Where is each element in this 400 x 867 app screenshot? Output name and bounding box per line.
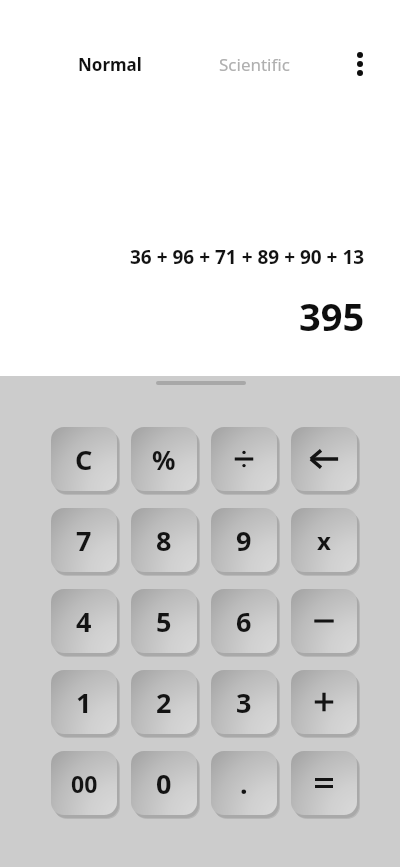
button[interactable]: Scientific (219, 49, 309, 79)
button[interactable]: More options (340, 44, 380, 84)
button[interactable]: 00 (51, 751, 117, 815)
button[interactable]: Backspace (291, 427, 357, 491)
button[interactable]: Normal (78, 49, 160, 79)
button[interactable]: Equals (291, 751, 357, 815)
staticText: 6 (236, 603, 252, 640)
button[interactable]: Subtract (291, 589, 357, 653)
staticText: % (152, 442, 176, 477)
staticText: 4 (76, 603, 92, 640)
staticText: 8 (156, 522, 172, 559)
button[interactable]: 9 (211, 508, 277, 572)
staticText: Normal (78, 53, 142, 76)
button[interactable]: 2 (131, 670, 197, 734)
button[interactable]: . (211, 751, 277, 815)
staticText: 5 (156, 603, 172, 640)
staticText: 00 (71, 768, 98, 799)
staticText: 7 (76, 522, 92, 559)
button[interactable]: Multiply (291, 508, 357, 572)
button[interactable]: Clear (51, 427, 117, 491)
staticText: 2 (156, 684, 172, 721)
staticText: 3 (236, 684, 252, 721)
staticText: 36 + 96 + 71 + 89 + 90 + 13 (130, 244, 365, 270)
button[interactable]: 0 (131, 751, 197, 815)
button[interactable]: % (131, 427, 197, 491)
button[interactable]: 1 (51, 670, 117, 734)
staticText: . (240, 765, 248, 802)
staticText: Scientific (219, 53, 290, 76)
button[interactable]: Add (291, 670, 357, 734)
button[interactable]: 5 (131, 589, 197, 653)
staticText: 9 (236, 522, 252, 559)
button[interactable]: Divide (211, 427, 277, 491)
staticText: 1 (76, 684, 92, 721)
staticText: 0 (156, 765, 172, 802)
staticText: 395 (299, 290, 365, 336)
button[interactable]: 7 (51, 508, 117, 572)
button[interactable]: 3 (211, 670, 277, 734)
staticText: C (75, 441, 93, 478)
button[interactable]: 4 (51, 589, 117, 653)
staticText: x (317, 524, 331, 557)
button[interactable]: 8 (131, 508, 197, 572)
button[interactable]: 6 (211, 589, 277, 653)
